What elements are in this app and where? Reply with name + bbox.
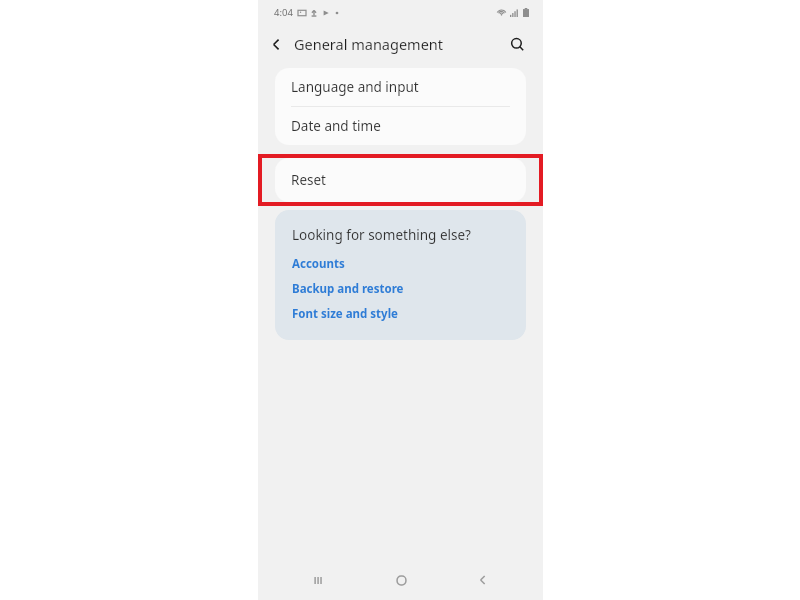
staticText: Backup and restore <box>292 281 404 297</box>
staticText: Date and time <box>291 117 381 135</box>
staticText: Language and input <box>291 78 419 96</box>
button[interactable]: Language and input <box>275 68 526 106</box>
button[interactable]: Backup and restore <box>292 281 404 297</box>
button[interactable]: Back <box>461 560 505 600</box>
staticText: Reset <box>291 171 326 189</box>
staticText: 4:04 <box>274 6 293 19</box>
button[interactable]: Home <box>379 560 423 600</box>
button[interactable]: Recent apps <box>296 560 340 600</box>
staticText: Looking for something else? <box>292 226 471 244</box>
staticText: Accounts <box>292 256 345 272</box>
button[interactable]: Date and time <box>275 107 526 145</box>
button[interactable]: Accounts <box>292 256 345 272</box>
button[interactable]: Font size and style <box>292 306 398 322</box>
staticText: General management <box>294 34 444 54</box>
staticText: Font size and style <box>292 306 398 322</box>
button[interactable]: Reset <box>275 158 526 202</box>
button[interactable]: Back <box>258 26 294 62</box>
button[interactable]: Search <box>499 26 535 62</box>
